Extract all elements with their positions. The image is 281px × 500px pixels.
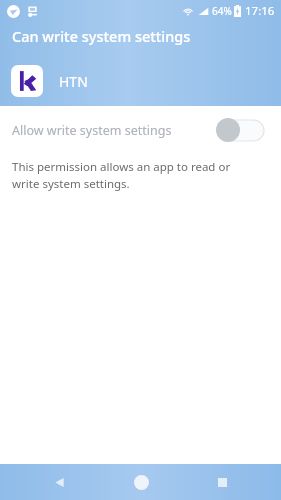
button[interactable]: Back <box>37 464 81 500</box>
button[interactable]: Allow write system settings <box>0 106 281 154</box>
button[interactable]: Home <box>119 464 163 500</box>
button[interactable]: HTN <box>0 59 281 103</box>
other: Allow write system settings toggle <box>215 117 267 143</box>
staticText: 17:16 <box>245 3 275 19</box>
staticText: HTN <box>59 72 88 91</box>
staticText: Can write system settings <box>12 26 191 46</box>
button[interactable]: Recent apps <box>200 464 244 500</box>
staticText: This permission allows an app to read or… <box>12 159 251 191</box>
staticText: 64% <box>212 4 232 18</box>
staticText: Allow write system settings <box>12 122 172 139</box>
